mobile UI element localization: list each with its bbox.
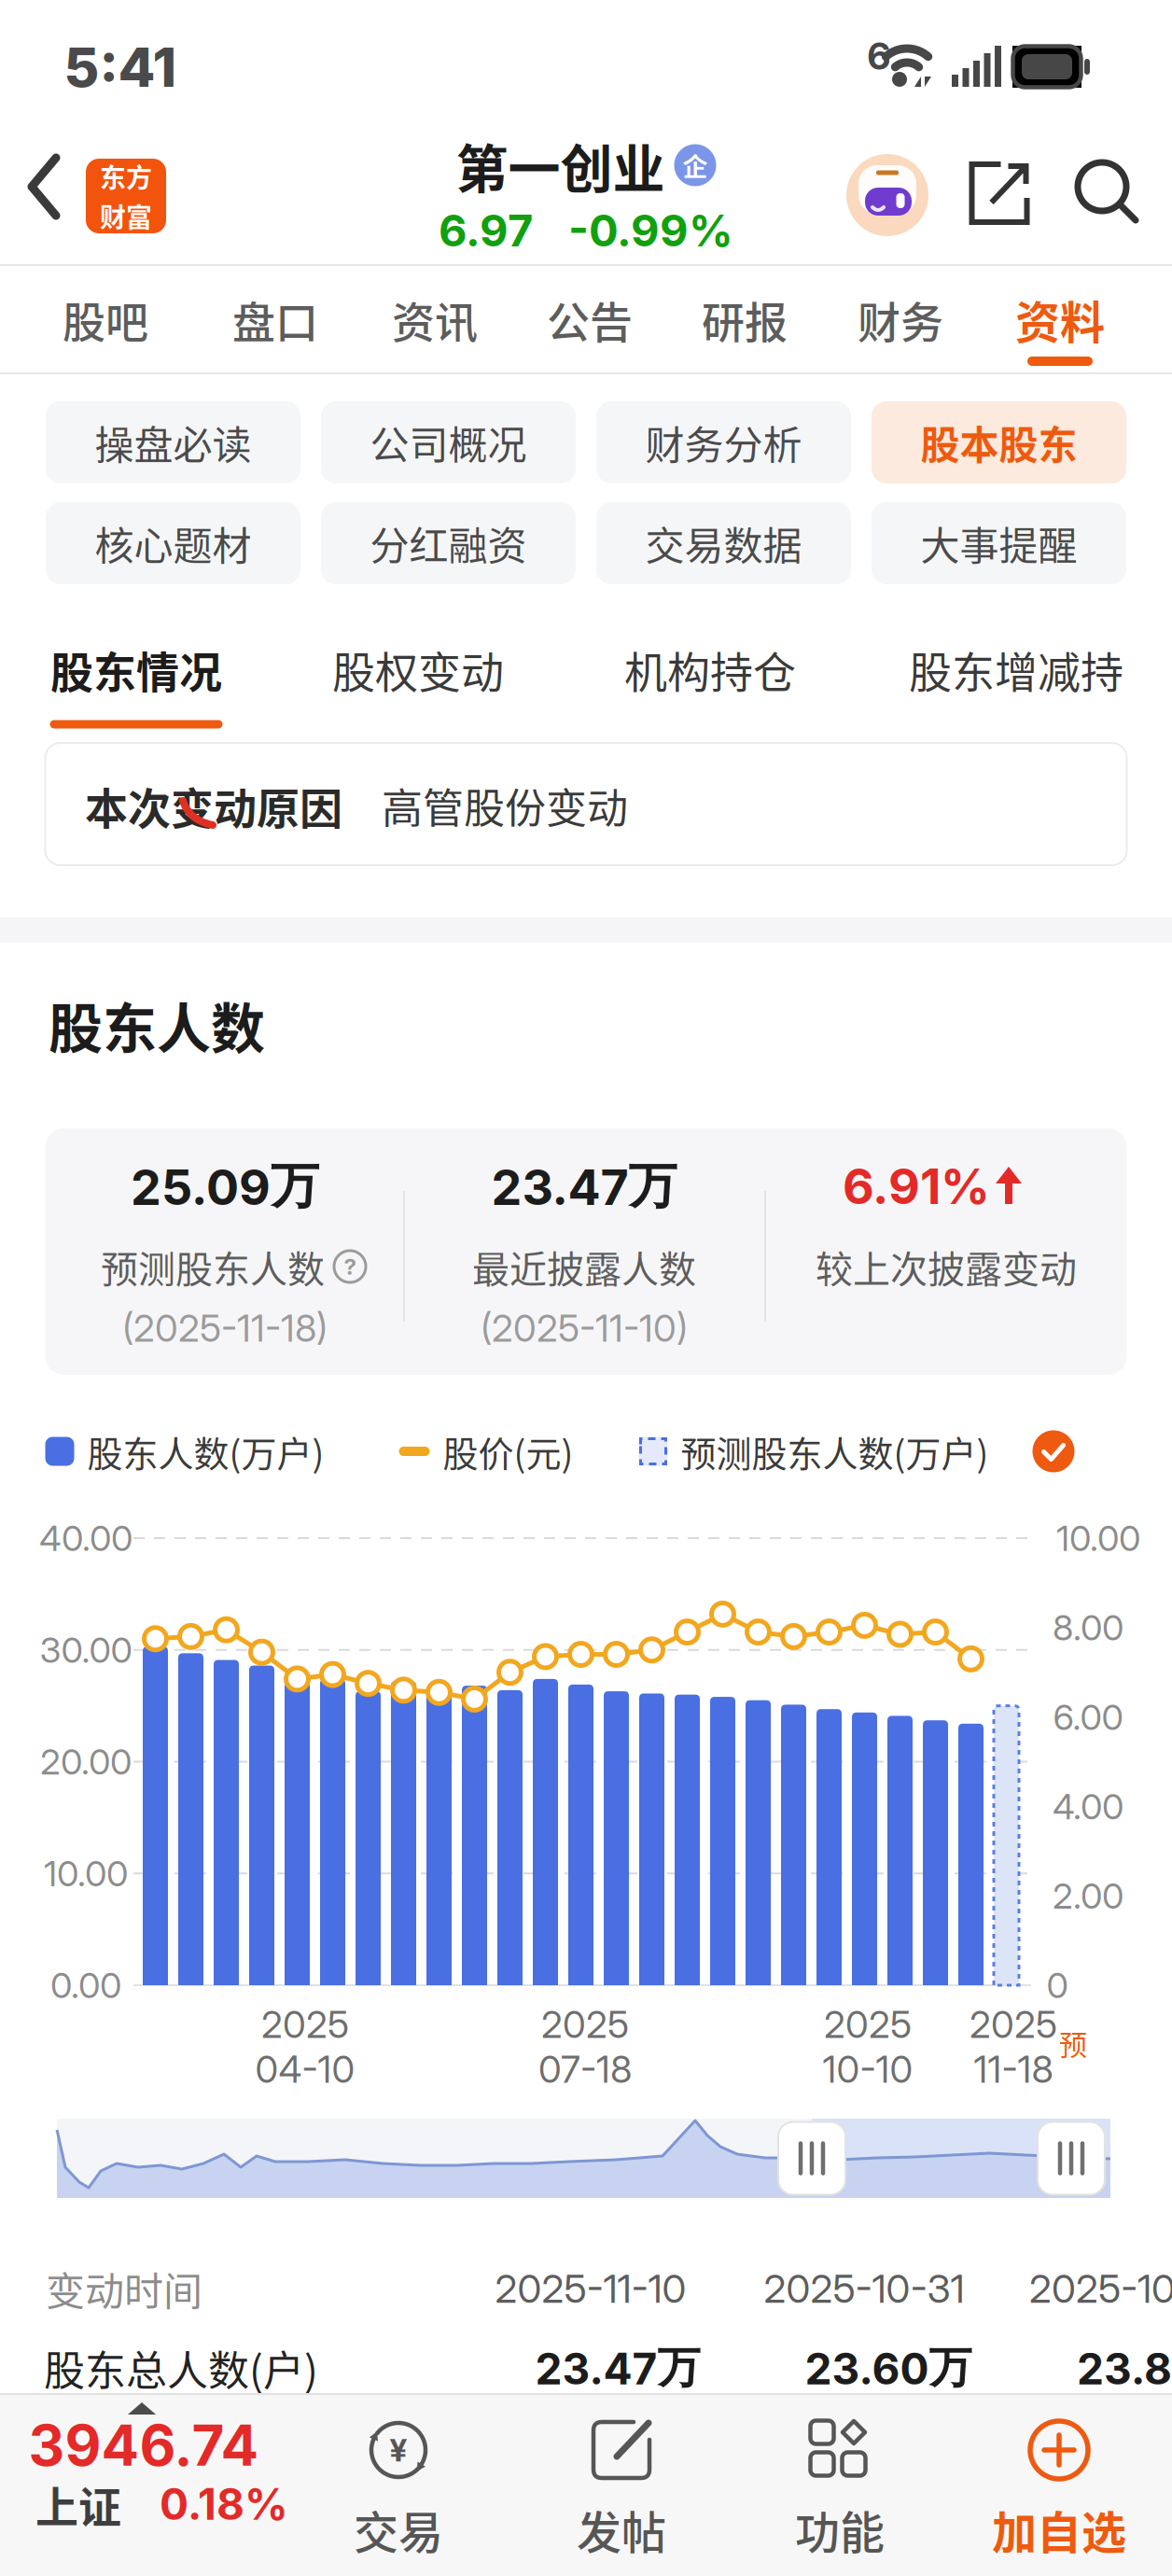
staticText: 预 xyxy=(1059,2023,1087,2063)
button[interactable]: 上证指数 xyxy=(0,2393,299,2576)
button[interactable]: 公司概况 xyxy=(321,401,576,483)
staticText: 25.09万 xyxy=(131,1156,319,1217)
button[interactable]: 大事提醒 xyxy=(872,502,1126,584)
staticText: 大事提醒 xyxy=(921,515,1077,572)
staticText: 股吧 xyxy=(63,288,148,350)
staticText: 8.00 xyxy=(1053,1606,1123,1649)
staticText: 预测股东人数(万户) xyxy=(681,1426,989,1477)
staticText: 07-18 xyxy=(538,2047,632,2092)
staticText: 发帖 xyxy=(577,2497,666,2562)
staticText: 2025-10-20 xyxy=(1029,2265,1172,2312)
staticText: 高管股份变动 xyxy=(382,776,628,835)
button[interactable]: 功能 xyxy=(765,2393,914,2576)
button[interactable]: 股权变动 xyxy=(332,638,504,700)
staticText: 交易 xyxy=(354,2497,443,2562)
staticText: 股权变动 xyxy=(332,638,504,700)
button[interactable]: 分红融资 xyxy=(321,502,576,584)
staticText: 6.97 xyxy=(439,204,533,257)
staticText: 操盘必读 xyxy=(95,414,251,471)
staticText: 23.47万 xyxy=(535,2341,700,2395)
staticText: ¥ xyxy=(390,2431,407,2469)
staticText: 40.00 xyxy=(39,1517,133,1560)
staticText: 核心题材 xyxy=(95,515,251,572)
staticText: 04-10 xyxy=(255,2047,355,2092)
staticText: 公司概况 xyxy=(370,414,527,471)
button[interactable]: 核心题材 xyxy=(46,502,300,584)
staticText: ? xyxy=(344,1253,356,1280)
staticText: 本次变动原因 xyxy=(85,774,342,837)
button[interactable]: 公告 xyxy=(547,288,633,350)
staticText: 4.00 xyxy=(1053,1785,1123,1828)
staticText: 财富 xyxy=(100,197,152,235)
staticText: 20.00 xyxy=(40,1740,132,1783)
button[interactable]: 股东情况 xyxy=(50,638,222,700)
staticText: 2.00 xyxy=(1053,1874,1123,1917)
staticText: 0.00 xyxy=(50,1964,121,2007)
button[interactable]: 盘口 xyxy=(232,288,318,350)
button[interactable]: 拖动手柄 xyxy=(778,2122,845,2195)
staticText: 10.00 xyxy=(1056,1517,1140,1560)
staticText: 10-10 xyxy=(823,2047,913,2092)
staticText: 股本股东 xyxy=(921,414,1077,471)
staticText: 6 xyxy=(867,33,891,79)
staticText: 2025 xyxy=(970,2002,1057,2047)
button[interactable]: 东方财富 xyxy=(86,157,166,235)
staticText: 10.00 xyxy=(44,1852,128,1895)
staticText: -0.99% xyxy=(568,204,733,257)
staticText: 2025 xyxy=(824,2002,912,2047)
staticText: 23.88万 xyxy=(1077,2341,1172,2395)
button[interactable]: 股本股东 xyxy=(872,401,1126,483)
staticText: 11-18 xyxy=(974,2047,1053,2092)
button[interactable]: 交易 xyxy=(324,2393,473,2576)
staticText: 财务分析 xyxy=(645,414,802,471)
button[interactable]: 拖动手柄 xyxy=(1038,2122,1105,2195)
staticText: 2025 xyxy=(541,2002,629,2047)
button[interactable]: 资料 xyxy=(1015,287,1105,352)
staticText: 财务 xyxy=(858,288,943,350)
staticText: 6.00 xyxy=(1053,1695,1123,1738)
button[interactable]: Search xyxy=(1076,161,1139,224)
button[interactable]: 资讯 xyxy=(392,288,478,350)
staticText: 股东人数 xyxy=(49,986,265,1064)
button[interactable]: Back xyxy=(28,154,62,219)
staticText: 预测股东人数 xyxy=(101,1239,325,1294)
staticText: 2025-10-31 xyxy=(764,2265,964,2312)
staticText: 30.00 xyxy=(40,1628,132,1671)
staticText: 第一创业 xyxy=(456,127,665,203)
staticText: 资讯 xyxy=(392,288,478,350)
button[interactable]: 收起图例 xyxy=(1032,1430,1074,1472)
staticText: 东方 xyxy=(100,157,152,195)
staticText: 股价(元) xyxy=(443,1426,573,1477)
button[interactable]: 操盘必读 xyxy=(46,401,300,483)
button[interactable]: 财务 xyxy=(858,288,943,350)
staticText: 6.91% xyxy=(843,1157,990,1216)
staticText: 上证 xyxy=(35,2473,121,2535)
staticText: 公告 xyxy=(547,288,633,350)
staticText: 分红融资 xyxy=(370,515,527,572)
staticText: 企 xyxy=(683,147,708,183)
button[interactable]: 股吧 xyxy=(63,288,148,350)
staticText: 较上次披露变动 xyxy=(816,1239,1077,1294)
staticText: 机构持仓 xyxy=(624,638,796,700)
button[interactable]: 加自选 xyxy=(984,2393,1134,2576)
staticText: 2025-11-10 xyxy=(495,2265,686,2312)
staticText: 0 xyxy=(1046,1964,1068,2007)
staticText: 3946.74 xyxy=(28,2411,259,2479)
staticText: 2025 xyxy=(261,2002,349,2047)
button[interactable]: AI 助手 xyxy=(846,154,928,236)
staticText: (2025-11-18) xyxy=(122,1306,328,1351)
staticText: (2025-11-10) xyxy=(481,1306,688,1351)
staticText: 变动时间 xyxy=(46,2260,202,2317)
button[interactable]: 财务分析 xyxy=(596,401,851,483)
button[interactable]: 交易数据 xyxy=(596,502,851,584)
button[interactable]: 发帖 xyxy=(547,2393,696,2576)
staticText: 功能 xyxy=(795,2497,885,2562)
button[interactable]: 机构持仓 xyxy=(624,638,796,700)
staticText: 加自选 xyxy=(992,2497,1126,2562)
staticText: 股东情况 xyxy=(50,638,222,700)
button[interactable]: 研报 xyxy=(702,288,788,350)
button[interactable]: Share xyxy=(969,161,1030,225)
staticText: 23.60万 xyxy=(805,2341,972,2395)
staticText: 23.47万 xyxy=(491,1156,677,1217)
button[interactable]: 股东增减持 xyxy=(909,638,1123,700)
